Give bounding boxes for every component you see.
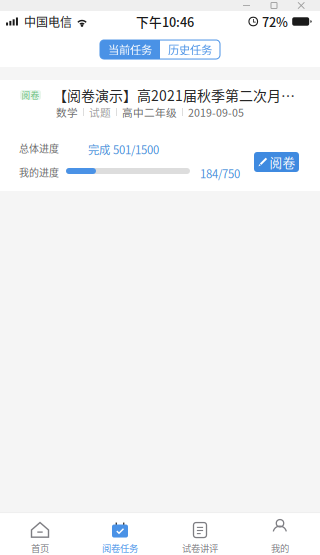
button[interactable]: 历史任务	[160, 40, 220, 59]
button[interactable]: 阅卷	[254, 152, 299, 172]
staticText: 阅卷	[21, 89, 39, 101]
staticText: 184/750	[200, 165, 240, 181]
staticText: 总体进度	[19, 141, 59, 155]
staticText: 阅卷	[269, 153, 295, 171]
button[interactable]: 我的	[240, 513, 320, 555]
staticText: 中国电信	[24, 13, 72, 30]
button[interactable]: 首页	[0, 513, 80, 555]
staticText: 2019-09-05	[188, 104, 244, 120]
staticText: 我的进度	[19, 165, 59, 179]
button[interactable]: 当前任务	[100, 40, 160, 59]
staticText: 首页	[31, 541, 49, 555]
staticText: 高中二年级	[122, 104, 177, 120]
staticText: 我的	[271, 541, 289, 555]
staticText: 下午10:46	[136, 12, 194, 31]
staticText: 当前任务	[108, 41, 152, 58]
staticText: 完成 501/1500	[88, 141, 159, 157]
button[interactable]: 试卷讲评	[160, 513, 240, 555]
staticText: 数学	[56, 104, 78, 120]
staticText: 72%	[262, 12, 288, 31]
button[interactable]: 阅卷任务	[80, 513, 160, 555]
staticText: 试卷讲评	[182, 541, 218, 555]
staticText: 【阅卷演示】高2021届秋季第二次月…	[53, 85, 295, 105]
staticText: 试题	[89, 104, 111, 120]
staticText: 历史任务	[168, 41, 212, 58]
staticText: 阅卷任务	[102, 541, 138, 555]
